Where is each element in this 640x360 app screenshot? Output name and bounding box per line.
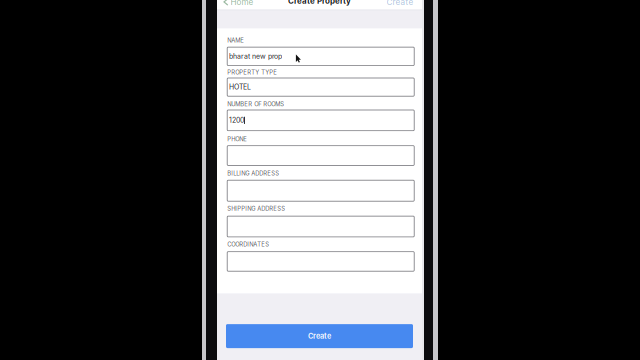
staticText: COORDINATES (227, 241, 269, 248)
button[interactable] (227, 146, 414, 165)
staticText: BILLING ADDRESS (227, 170, 279, 177)
staticText: Create Property (288, 0, 351, 6)
staticText: NAME (227, 37, 244, 44)
staticText: Create (308, 332, 331, 341)
staticText: Create (386, 0, 413, 7)
staticText: PHONE (227, 136, 247, 143)
button[interactable] (227, 252, 414, 271)
button[interactable] (227, 180, 414, 201)
button[interactable]: HOTEL (227, 78, 414, 96)
staticText: PROPERTY TYPE (227, 69, 277, 76)
staticText: bharat new prop (229, 52, 282, 60)
staticText: Home (231, 0, 254, 7)
button[interactable]: Create (226, 324, 413, 348)
button[interactable] (227, 216, 414, 237)
staticText: 1200 (229, 116, 244, 125)
button[interactable]: 1200 (227, 110, 414, 131)
button[interactable]: Home (217, 0, 254, 5)
staticText: NUMBER OF ROOMS (227, 101, 284, 108)
button[interactable]: Create (386, 0, 422, 5)
staticText: HOTEL (229, 83, 251, 91)
staticText: SHIPPING ADDRESS (227, 205, 285, 212)
button[interactable]: bharat new prop (227, 47, 414, 65)
